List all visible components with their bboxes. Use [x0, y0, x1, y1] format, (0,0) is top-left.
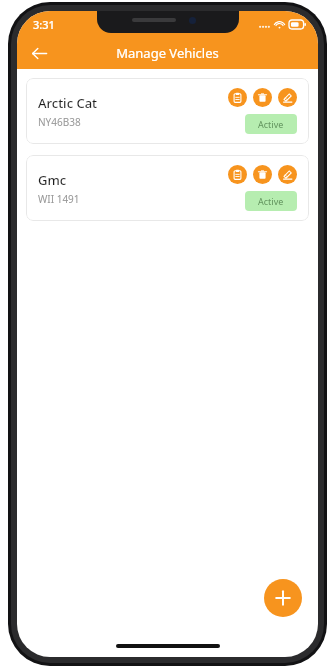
- button[interactable]: Active: [245, 114, 297, 134]
- button[interactable]: Arctic Cat: [26, 78, 309, 144]
- staticText: Active: [258, 195, 284, 207]
- button[interactable]: Add vehicle: [264, 579, 302, 617]
- button[interactable]: Active: [245, 191, 297, 211]
- button[interactable]: Edit: [278, 165, 297, 184]
- staticText: 3:31: [33, 17, 55, 32]
- button[interactable]: Back: [23, 37, 55, 69]
- button[interactable]: Details: [228, 165, 247, 184]
- staticText: Arctic Cat: [38, 94, 98, 112]
- staticText: Manage Vehicles: [116, 44, 219, 62]
- staticText: WII 1491: [38, 192, 80, 206]
- button[interactable]: Delete: [253, 88, 272, 107]
- staticText: Gmc: [38, 171, 67, 189]
- button[interactable]: Edit: [278, 88, 297, 107]
- staticText: Active: [258, 118, 284, 130]
- button[interactable]: Delete: [253, 165, 272, 184]
- button[interactable]: Details: [228, 88, 247, 107]
- button[interactable]: Gmc: [26, 155, 309, 221]
- staticText: NY46B38: [38, 115, 81, 129]
